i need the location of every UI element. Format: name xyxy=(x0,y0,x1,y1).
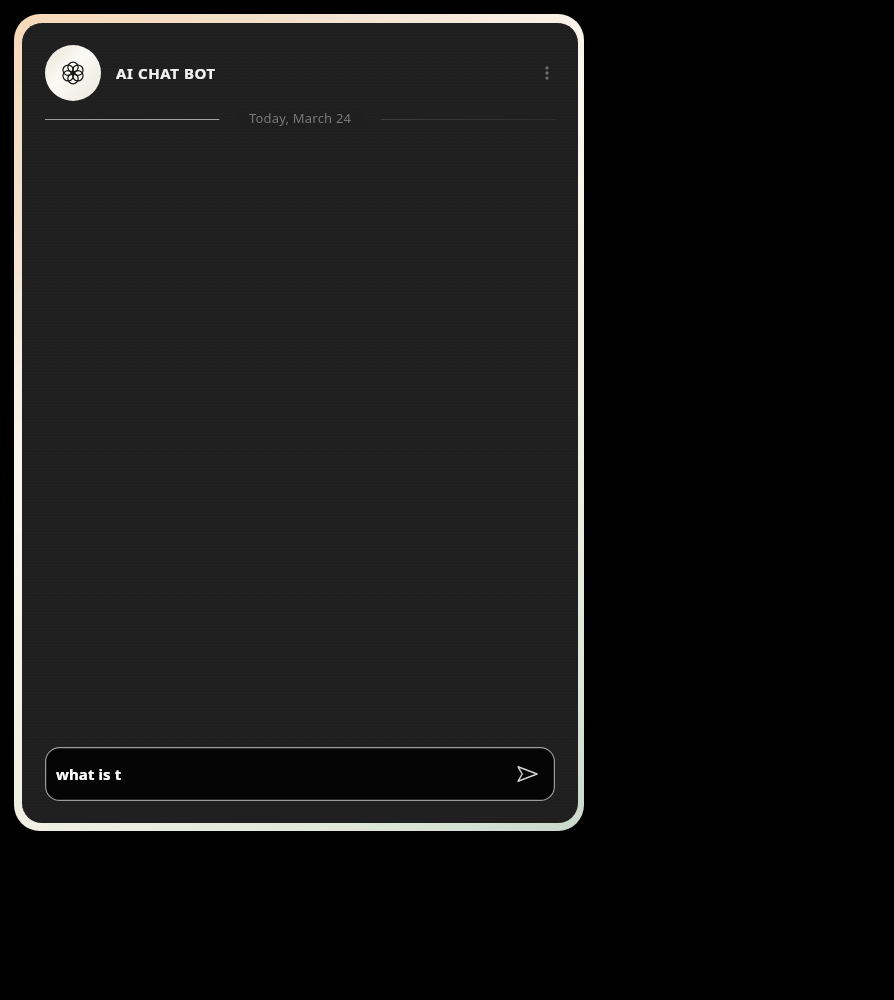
button[interactable]: what is t xyxy=(45,747,555,801)
staticText: AI CHAT BOT xyxy=(116,63,216,83)
button[interactable]: Send xyxy=(509,756,545,792)
button[interactable]: More options xyxy=(530,56,564,90)
staticText: what is t xyxy=(56,764,122,784)
button[interactable]: Bot avatar xyxy=(45,45,101,101)
staticText: Today, March 24 xyxy=(249,109,352,127)
